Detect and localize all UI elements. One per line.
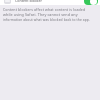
staticText: Content Blocker — [15, 0, 43, 3]
staticText: information about what was blocked back … — [3, 18, 90, 22]
staticText: while using Safari. They cannot send any — [3, 12, 78, 17]
button[interactable]: Toggle content blocker — [84, 0, 98, 5]
button[interactable] — [0, 0, 100, 5]
other: App icon — [4, 0, 11, 4]
staticText: Content blockers affect what content is … — [3, 7, 86, 12]
